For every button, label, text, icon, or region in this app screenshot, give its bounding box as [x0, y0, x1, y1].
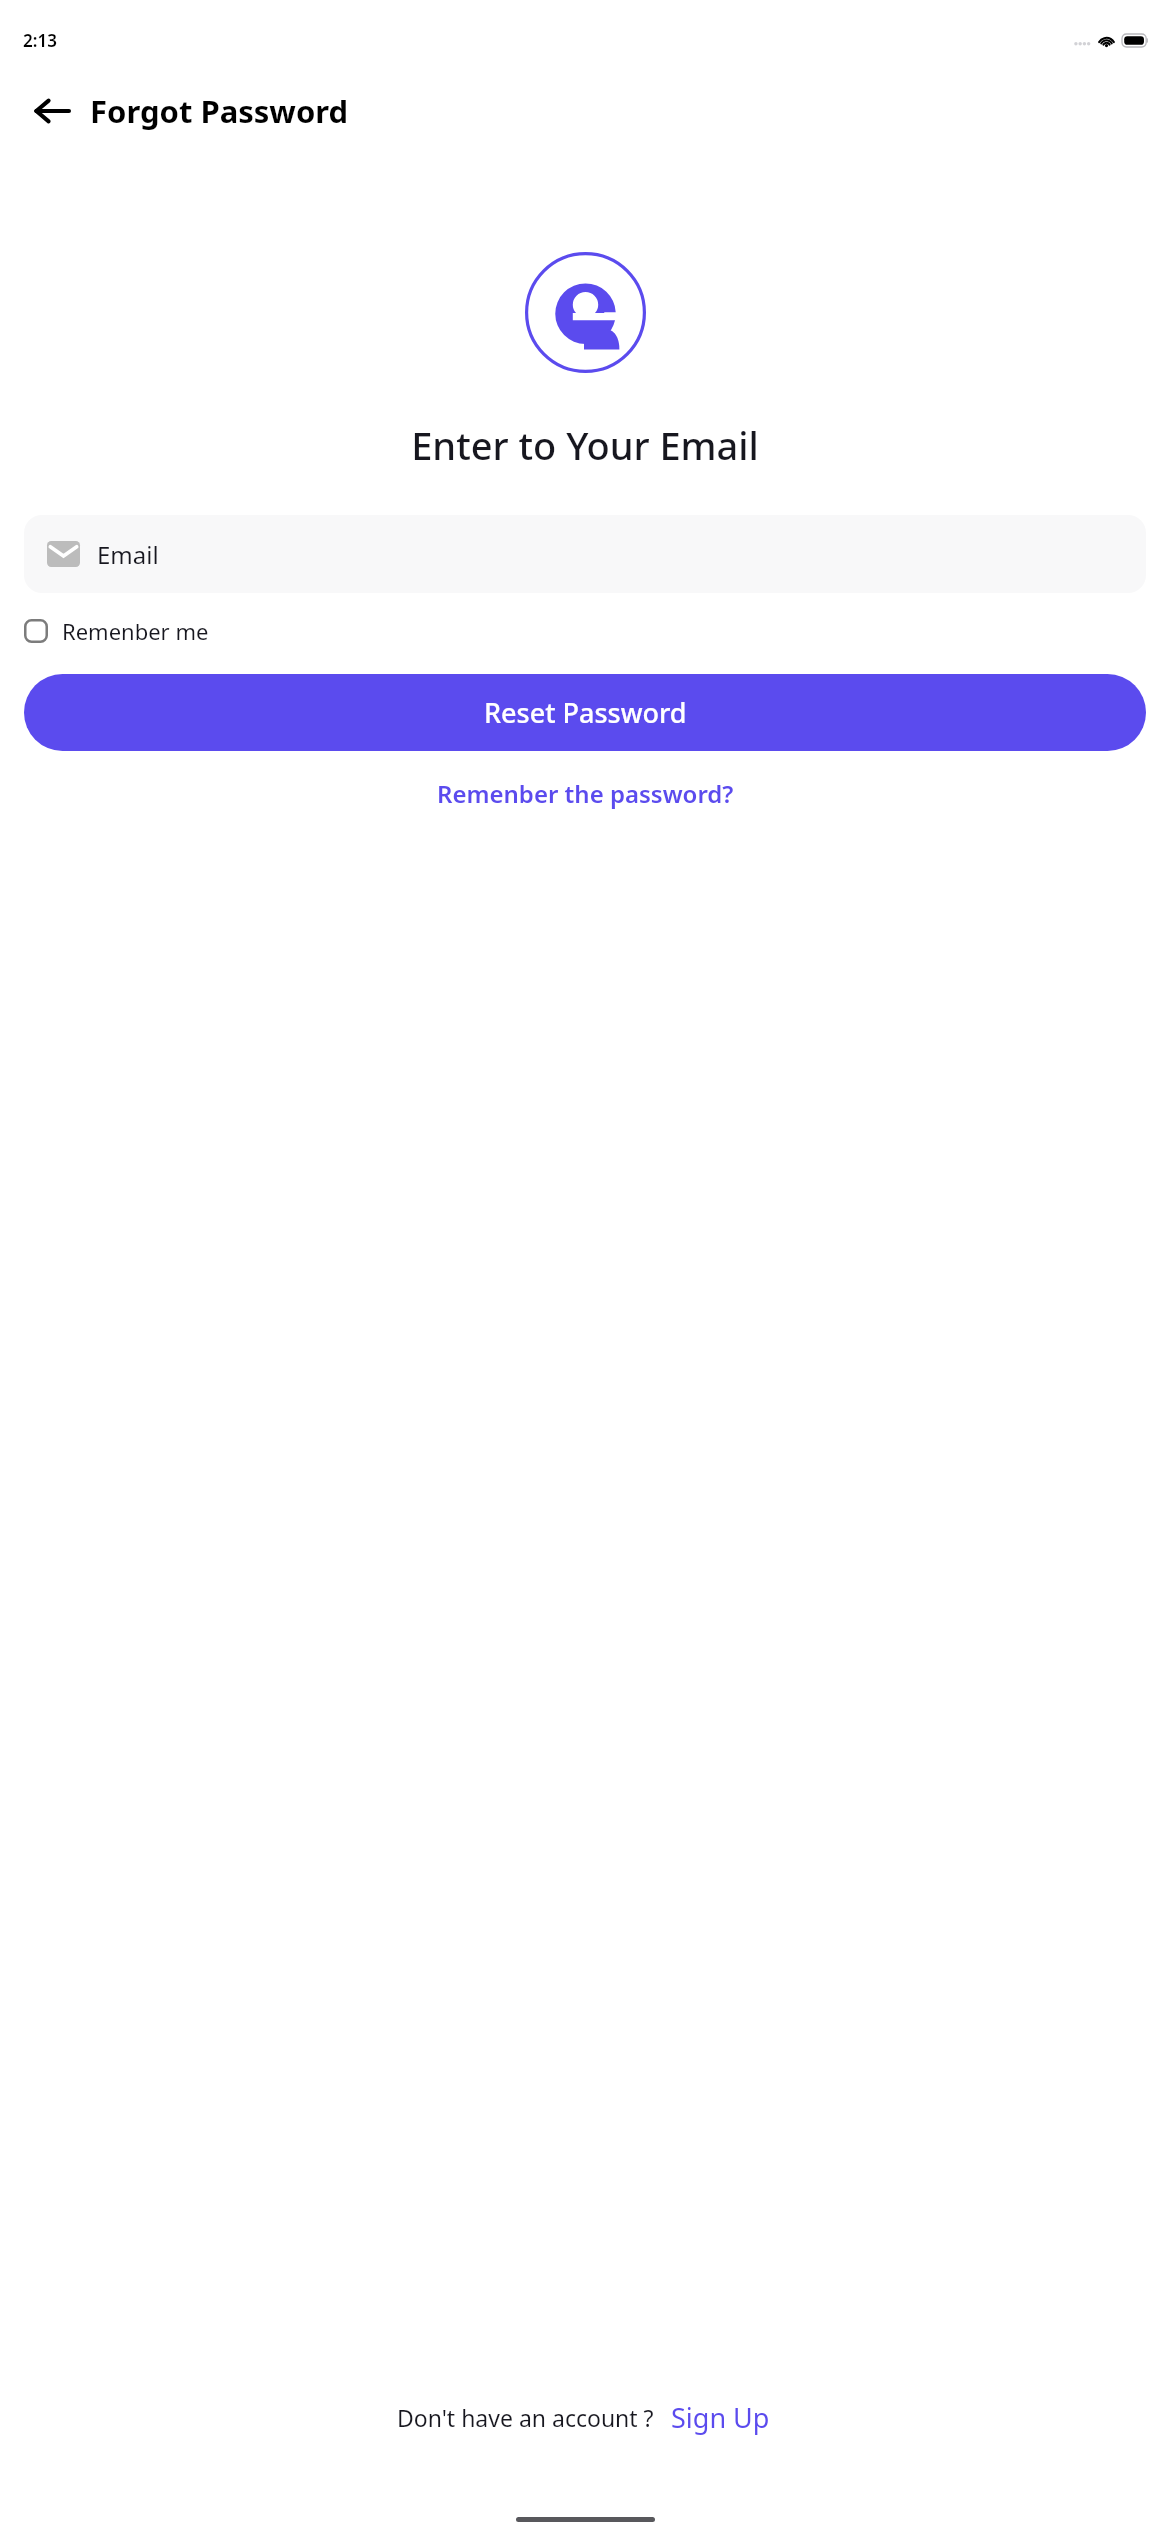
staticText: Remenber me: [62, 616, 209, 646]
button[interactable]: Sign Up: [667, 2395, 774, 2440]
button[interactable]: Reset Password: [24, 674, 1146, 751]
staticText: Reset Password: [484, 694, 687, 731]
staticText: Email: [97, 538, 159, 571]
staticText: Sign Up: [671, 2399, 770, 2436]
staticText: 2:13: [23, 29, 57, 52]
button[interactable]: Remenber the password?: [425, 771, 746, 816]
button[interactable]: Remenber me: [24, 612, 221, 650]
staticText: Don't have an account ?: [397, 2402, 654, 2433]
staticText: Forgot Password: [90, 90, 349, 132]
staticText: Enter to Your Email: [411, 419, 759, 471]
button[interactable]: Email: [24, 515, 1146, 593]
staticText: Remenber the password?: [437, 777, 734, 810]
button[interactable]: Back: [24, 83, 80, 139]
